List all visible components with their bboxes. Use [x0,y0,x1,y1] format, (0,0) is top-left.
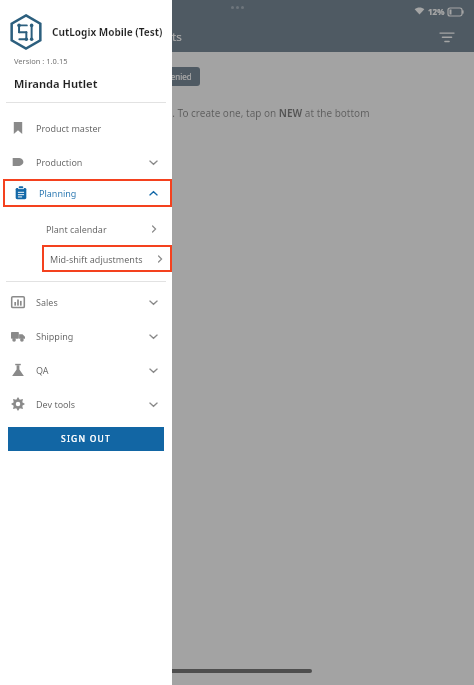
staticText: Miranda Hutlet [14,76,98,91]
button[interactable]: Planning [3,179,172,207]
staticText: Sales [36,296,58,308]
button[interactable]: Sales [0,285,172,319]
staticText: Planning [39,187,77,199]
staticText: There are no requests at this time. To c… [14,106,370,120]
staticText: 11:40 AM Wed May 29 [10,6,97,17]
button[interactable]: Dev tools [0,387,172,421]
staticText: Dev tools [36,398,76,410]
button[interactable]: Denied [151,67,192,86]
staticText: SIGN OUT [61,433,111,445]
staticText: CutLogix Mobile (Test) [52,25,163,39]
staticText: Plant calendar [46,223,107,235]
staticText: 12% [428,6,445,17]
staticText: Version : 1.0.15 [14,56,68,66]
staticText: QA [36,364,49,376]
button[interactable]: Approved [76,67,127,86]
button[interactable]: Production [0,145,172,179]
staticText: Production [36,156,83,168]
button[interactable]: Mid-shift adjustments [50,245,164,272]
staticText: Mid-shift adjustments [50,253,143,265]
button[interactable]: QA [0,353,172,387]
staticText: CutLogix Mid-shift Adjustments [12,29,182,45]
button[interactable]: Shipping [0,319,172,353]
staticText: Denied [165,71,192,82]
button[interactable]: Filter [434,24,460,50]
staticText: Product master [36,122,102,134]
button[interactable]: SIGN OUT [8,427,164,451]
button[interactable]: Pending [20,67,52,86]
button[interactable]: Plant calendar [46,217,158,241]
button[interactable]: Product master [0,111,172,145]
staticText: Pending [20,71,52,82]
staticText: Approved [90,71,127,82]
staticText: Shipping [36,330,74,342]
